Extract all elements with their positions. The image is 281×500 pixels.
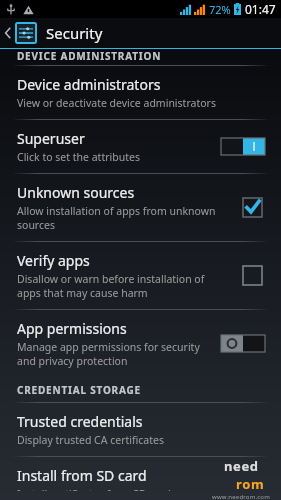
staticText: CREDENTIAL STORAGE [17, 383, 141, 397]
staticText: Verify apps [17, 251, 90, 270]
staticText: 72% [209, 2, 231, 17]
button[interactable]: App permissions [0, 310, 281, 377]
staticText: Install from SD card [17, 466, 147, 485]
staticText: App permissions [17, 319, 127, 338]
staticText: 01:47 [245, 1, 276, 17]
staticText: Display trusted CA certificates [17, 433, 164, 447]
staticText: Allow installation of apps from unknown … [17, 204, 216, 232]
button[interactable]: Superuser [0, 120, 281, 173]
staticText: need [224, 457, 259, 475]
staticText: Trusted credentials [17, 412, 143, 431]
staticText: Install certificates from SD card [17, 487, 171, 491]
staticText: View or deactivate device administrators [17, 96, 216, 110]
button[interactable]: Verify apps [0, 242, 281, 309]
button[interactable]: Device administrators [0, 66, 281, 119]
staticText: www.needrom.com [212, 493, 271, 500]
button[interactable]: Install from SD card [0, 457, 281, 500]
staticText: Unknown sources [17, 183, 135, 202]
staticText: Security [46, 23, 103, 43]
staticText: Manage app permissions for security and … [17, 340, 200, 368]
staticText: Device administrators [17, 75, 161, 94]
staticText: Disallow or warn before installation of … [17, 272, 205, 300]
button[interactable]: Trusted credentials [0, 403, 281, 456]
staticText: Click to set the attributes [17, 150, 140, 164]
staticText: DEVICE ADMINISTRATION [17, 49, 162, 62]
button[interactable]: Unknown sources [0, 174, 281, 241]
button[interactable]: Navigate up [0, 19, 39, 47]
staticText: rom [236, 475, 265, 493]
staticText: Superuser [17, 129, 85, 148]
